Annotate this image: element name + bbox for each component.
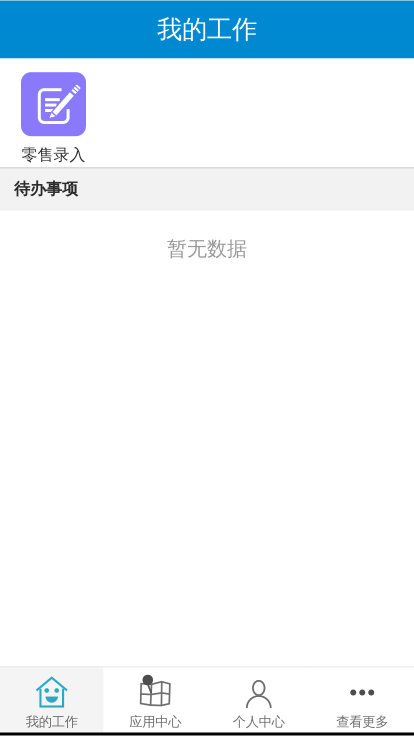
button[interactable]: 查看更多	[310, 667, 414, 732]
staticText: 查看更多	[336, 713, 388, 730]
staticText: 待办事项	[14, 179, 78, 199]
staticText: 我的工作	[26, 713, 78, 730]
staticText: 我的工作	[157, 14, 257, 45]
staticText: 应用中心	[129, 713, 181, 730]
button[interactable]: 个人中心	[207, 667, 310, 732]
staticText: 个人中心	[233, 713, 285, 730]
button[interactable]: 应用中心	[103, 667, 207, 732]
button[interactable]: 我的工作	[0, 667, 103, 732]
staticText: 暂无数据	[167, 236, 247, 261]
button[interactable]: 零售录入	[0, 61, 107, 165]
staticText: 零售录入	[21, 145, 85, 165]
